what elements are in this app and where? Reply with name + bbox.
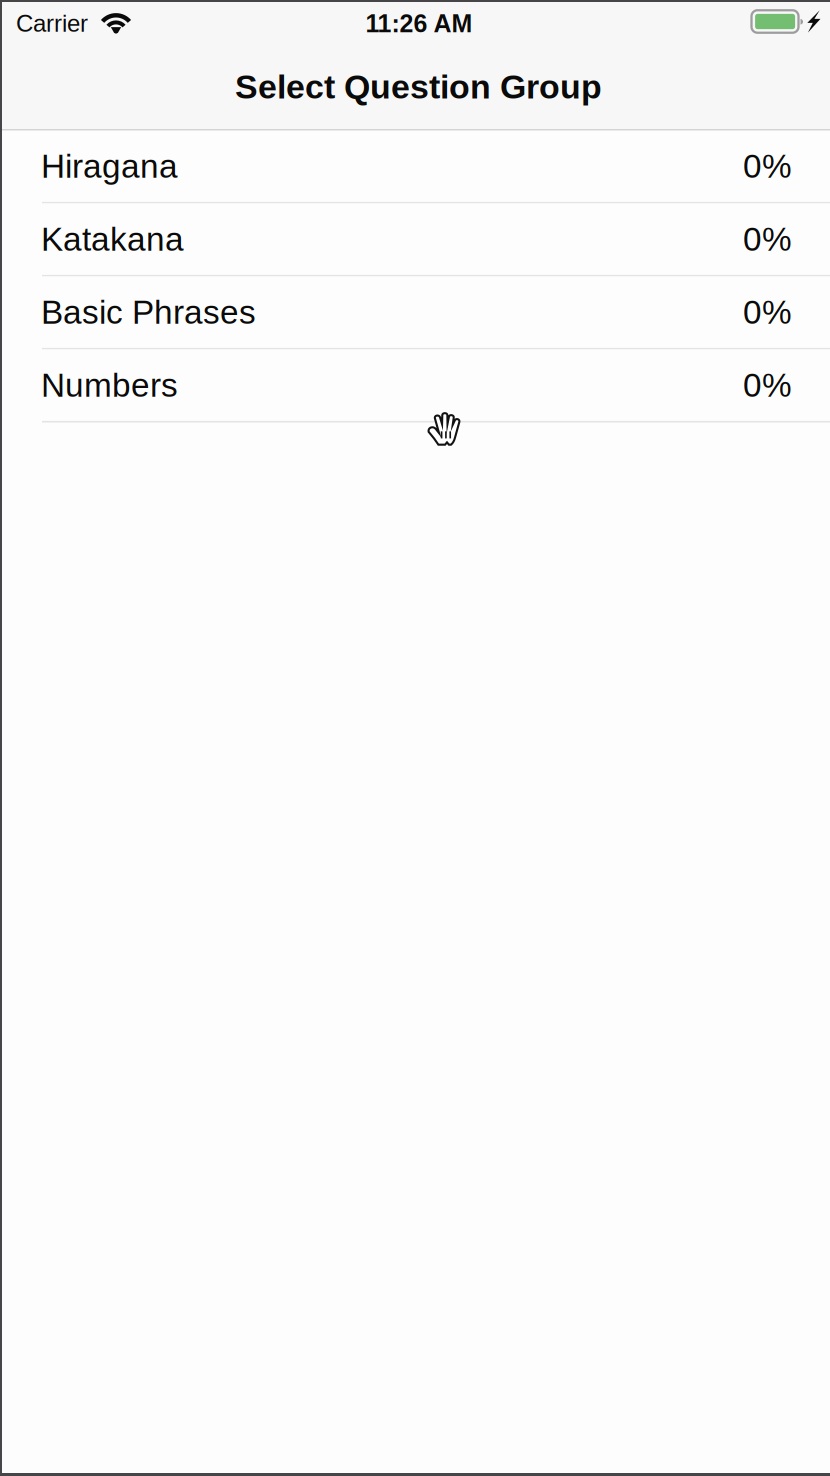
staticText: 0% bbox=[743, 294, 792, 331]
button[interactable]: Hiragana bbox=[2, 130, 830, 203]
button[interactable]: Katakana bbox=[2, 203, 830, 276]
staticText: Numbers bbox=[41, 367, 178, 404]
button[interactable]: Numbers bbox=[2, 349, 830, 422]
button[interactable]: Basic Phrases bbox=[2, 276, 830, 349]
staticText: Select Question Group bbox=[235, 68, 602, 105]
staticText: 0% bbox=[743, 221, 792, 258]
staticText: Katakana bbox=[41, 221, 184, 258]
staticText: 0% bbox=[743, 148, 792, 185]
staticText: Hiragana bbox=[41, 148, 178, 185]
staticText: Basic Phrases bbox=[41, 294, 256, 331]
staticText: 11:26 AM bbox=[365, 10, 472, 37]
staticText: 0% bbox=[743, 367, 792, 404]
staticText: Carrier bbox=[16, 10, 88, 37]
